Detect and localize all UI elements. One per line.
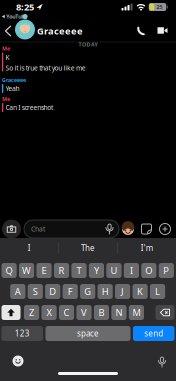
staticText: Y	[94, 264, 99, 277]
staticText: G	[84, 285, 91, 298]
staticText: E	[41, 264, 46, 277]
button[interactable]: 123	[1, 326, 43, 341]
button[interactable]: Video call	[154, 24, 170, 37]
staticText: The	[81, 243, 95, 253]
button[interactable]: Camera	[2, 219, 21, 238]
button[interactable]: V	[76, 305, 92, 320]
staticText: B	[98, 306, 104, 319]
staticText: I	[130, 264, 133, 277]
button[interactable]: S	[28, 284, 43, 299]
staticText: K	[5, 53, 9, 62]
staticText: D	[49, 285, 56, 298]
button[interactable]: J	[115, 284, 130, 299]
staticText: Yeah	[5, 84, 20, 93]
staticText: A	[15, 285, 21, 298]
button[interactable]: X	[41, 305, 57, 320]
staticText: space	[77, 328, 99, 339]
staticText: U	[110, 264, 117, 277]
button[interactable]: R	[54, 263, 69, 278]
button[interactable]: send	[133, 326, 174, 341]
staticText: Me	[2, 45, 10, 52]
button[interactable]: U	[106, 263, 121, 278]
button[interactable]: T	[71, 263, 87, 278]
staticText: YouTube	[6, 13, 27, 20]
staticText: K	[137, 285, 143, 298]
button[interactable]: E	[36, 263, 52, 278]
staticText: H	[102, 285, 109, 298]
staticText: O	[145, 264, 152, 277]
button[interactable]: Dictation	[156, 353, 168, 371]
button[interactable]: B	[94, 305, 109, 320]
button[interactable]: M	[129, 305, 144, 320]
button[interactable]: Z	[24, 305, 39, 320]
staticText: Me	[2, 95, 10, 103]
staticText: J	[121, 285, 124, 298]
staticText: N	[115, 306, 122, 319]
button[interactable]: Audio call	[135, 23, 149, 37]
button[interactable]: P	[159, 263, 174, 278]
staticText: Graceeee	[2, 76, 26, 84]
staticText: I'm	[141, 243, 153, 253]
button[interactable]: W	[19, 263, 34, 278]
button[interactable]: More	[159, 223, 170, 234]
button[interactable]: Q	[1, 263, 17, 278]
staticText: Q	[6, 264, 13, 277]
button[interactable]: G	[80, 284, 95, 299]
button[interactable]: H	[97, 284, 113, 299]
staticText: R	[58, 264, 64, 277]
staticText: M	[132, 306, 140, 319]
staticText: Chat	[31, 225, 45, 233]
button[interactable]: Back	[1, 22, 14, 40]
staticText: I	[28, 243, 31, 253]
staticText: TODAY	[78, 41, 97, 48]
staticText: F	[68, 285, 73, 298]
button[interactable]: Emoji	[10, 353, 25, 368]
button[interactable]: I	[25, 240, 34, 256]
staticText: Can I screenshot	[5, 103, 53, 112]
button[interactable]: Chat	[24, 220, 119, 238]
staticText: T	[76, 264, 81, 277]
button[interactable]: Y	[89, 263, 104, 278]
staticText: Z	[29, 306, 34, 319]
staticText: Graceeee	[37, 25, 83, 37]
button[interactable]: L	[150, 284, 165, 299]
button[interactable]: space	[45, 326, 130, 341]
staticText: X	[47, 306, 52, 319]
button[interactable]: N	[111, 305, 126, 320]
staticText: L	[155, 285, 160, 298]
button[interactable]: The	[78, 240, 98, 256]
button[interactable]: K	[132, 284, 148, 299]
staticText: V	[81, 306, 87, 319]
staticText: 25	[156, 3, 162, 11]
button[interactable]: F	[63, 284, 78, 299]
staticText: P	[163, 264, 169, 277]
button[interactable]: Stickers	[141, 224, 151, 234]
staticText: C	[63, 306, 69, 319]
staticText: 123	[15, 328, 30, 339]
button[interactable]: Delete	[155, 305, 174, 320]
button[interactable]: O	[141, 263, 156, 278]
staticText: send	[144, 328, 163, 339]
button[interactable]: A	[10, 284, 25, 299]
staticText: 8:25	[16, 1, 34, 13]
button[interactable]: D	[45, 284, 60, 299]
button[interactable]: I	[124, 263, 139, 278]
button[interactable]: Bitmoji stickers	[121, 222, 134, 235]
staticText: S	[33, 285, 38, 298]
button[interactable]: C	[59, 305, 74, 320]
staticText: So it is true that you like me	[5, 64, 86, 72]
button[interactable]: Shift	[1, 305, 20, 320]
staticText: W	[22, 264, 31, 277]
button[interactable]: I'm	[138, 240, 156, 256]
